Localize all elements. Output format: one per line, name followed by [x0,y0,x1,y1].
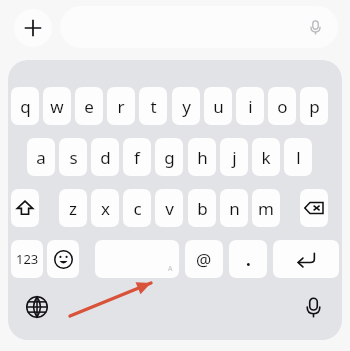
button[interactable]: n [220,189,248,227]
button[interactable]: Emoji [47,240,79,278]
staticText: a [36,146,46,169]
staticText: f [134,146,140,169]
button[interactable]: b [188,189,216,227]
button[interactable]: i [236,87,264,125]
button[interactable]: e [75,87,103,125]
staticText: . [246,248,251,271]
staticText: d [100,146,111,169]
button[interactable]: m [252,189,280,227]
staticText: u [213,95,224,118]
staticText: r [117,95,125,118]
button[interactable]: f [123,138,151,176]
staticText: o [277,95,288,118]
staticText: e [84,95,94,118]
button[interactable]: Add attachment [14,9,52,47]
button[interactable]: h [188,138,216,176]
button[interactable]: o [268,87,296,125]
button[interactable]: u [204,87,232,125]
staticText: s [69,146,78,169]
button[interactable]: Shift [11,189,39,227]
staticText: c [133,197,142,220]
staticText: m [258,197,274,220]
button[interactable]: g [155,138,183,176]
button[interactable]: Voice typing [296,290,330,324]
staticText: p [309,95,320,118]
button[interactable]: t [139,87,167,125]
staticText: 123 [16,250,39,268]
button[interactable]: At sign [185,240,223,278]
staticText: w [50,95,64,118]
button[interactable]: j [220,138,248,176]
button[interactable]: Change keyboard language [20,290,54,324]
button[interactable]: s [59,138,87,176]
staticText: x [101,197,110,220]
button[interactable]: Space [95,240,179,278]
button[interactable]: c [123,189,151,227]
button[interactable]: y [172,87,200,125]
staticText: g [164,146,175,169]
button[interactable]: l [284,138,312,176]
staticText: b [197,197,208,220]
staticText: q [20,95,31,118]
button[interactable]: d [91,138,119,176]
button[interactable]: Period [229,240,267,278]
button[interactable]: Voice input [302,14,328,40]
staticText: z [69,197,77,220]
staticText: j [232,146,237,169]
button[interactable]: a [27,138,55,176]
staticText: @ [196,248,212,271]
staticText: l [296,146,301,169]
staticText: n [229,197,240,220]
button[interactable]: Backspace [300,189,328,227]
staticText: h [197,146,208,169]
staticText: v [165,197,174,220]
button[interactable]: q [11,87,39,125]
staticText: k [261,146,271,169]
staticText: y [182,95,191,118]
staticText: i [248,95,253,118]
button[interactable]: k [252,138,280,176]
staticText: t [150,95,157,118]
button[interactable]: Enter [273,240,339,278]
button[interactable]: r [107,87,135,125]
button[interactable]: Voice input [60,6,338,48]
button[interactable]: p [300,87,328,125]
button[interactable]: x [91,189,119,227]
button[interactable]: z [59,189,87,227]
button[interactable]: w [43,87,71,125]
button[interactable]: 123 symbols [11,240,43,278]
staticText: A [168,264,173,274]
button[interactable]: v [155,189,183,227]
